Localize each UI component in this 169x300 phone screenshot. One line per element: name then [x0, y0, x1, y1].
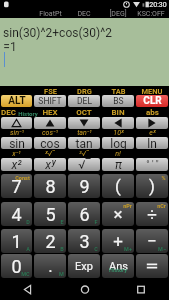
button[interactable]: ): [136, 174, 168, 198]
button[interactable]: SHIFT: [34, 95, 66, 107]
staticText: π: [115, 158, 122, 171]
staticText: x²: [11, 158, 22, 171]
button[interactable]: .: [34, 254, 66, 278]
staticText: .: [48, 256, 53, 276]
button[interactable]: Move right: [136, 117, 168, 129]
button[interactable]: Recent apps: [113, 280, 169, 300]
staticText: DEC: [1, 108, 16, 116]
staticText: %: [161, 175, 166, 181]
staticText: B: [60, 246, 64, 252]
button[interactable]: −: [136, 229, 168, 253]
button[interactable]: 7: [1, 174, 32, 198]
button[interactable]: Scroll up: [1, 117, 32, 129]
staticText: 9: [79, 176, 90, 197]
button[interactable]: ° ′ ″: [136, 158, 168, 171]
staticText: Const: [15, 175, 30, 181]
button[interactable]: cos: [34, 137, 66, 149]
staticText: History: [18, 110, 38, 117]
staticText: nPr: [123, 203, 132, 209]
button[interactable]: Ans: [102, 254, 134, 278]
staticText: DEC: [77, 10, 91, 18]
staticText: sin(30)^2+cos(30)^2: [3, 26, 112, 40]
staticText: ° ′ ″: [146, 159, 159, 170]
button[interactable]: CLR: [136, 95, 168, 107]
staticText: BS: [113, 96, 124, 106]
staticText: M: [59, 271, 64, 277]
staticText: 3: [79, 231, 90, 252]
button[interactable]: DEL: [68, 95, 100, 107]
button[interactable]: π: [102, 158, 134, 171]
staticText: ): [149, 176, 155, 196]
button[interactable]: xʸ: [34, 158, 66, 171]
staticText: M−: [158, 246, 166, 252]
staticText: BIN: [111, 108, 125, 116]
button[interactable]: 1: [1, 229, 32, 253]
button[interactable]: ×: [102, 202, 134, 226]
button[interactable]: 2: [34, 229, 66, 253]
staticText: eˣ: [149, 129, 156, 136]
button[interactable]: 3: [68, 229, 100, 253]
staticText: Exp: [75, 260, 93, 273]
button[interactable]: Move down: [68, 117, 100, 129]
staticText: 4: [11, 204, 22, 225]
staticText: =1: [3, 40, 17, 54]
button[interactable]: 9: [68, 174, 100, 198]
button[interactable]: Back: [0, 280, 56, 300]
button[interactable]: (: [102, 174, 134, 198]
staticText: ALT: [8, 95, 26, 107]
staticText: ÷: [147, 204, 157, 224]
button[interactable]: Home: [57, 280, 113, 300]
button[interactable]: BS: [102, 95, 134, 107]
staticText: DEL: [77, 96, 92, 106]
staticText: FloatPt: [39, 10, 62, 18]
staticText: ln: [147, 137, 157, 149]
staticText: TAB: [111, 87, 126, 94]
staticText: E: [60, 219, 64, 225]
staticText: cos: [40, 137, 60, 149]
button[interactable]: 4: [1, 202, 32, 226]
staticText: C: [94, 246, 98, 252]
staticText: F: [94, 219, 98, 225]
staticText: 6: [79, 204, 90, 225]
staticText: x⁻¹: [12, 150, 21, 157]
button[interactable]: ln: [136, 137, 168, 149]
staticText: 8: [45, 176, 56, 197]
staticText: A: [26, 246, 30, 252]
staticText: SHIFT: [38, 96, 62, 106]
button[interactable]: 8: [34, 174, 66, 198]
staticText: ×: [113, 204, 123, 224]
button[interactable]: ÷: [136, 202, 168, 226]
button[interactable]: [136, 254, 168, 278]
staticText: log: [110, 137, 127, 149]
staticText: Ans: [109, 260, 128, 273]
button[interactable]: x²: [1, 158, 32, 171]
staticText: sin: [9, 137, 25, 149]
button[interactable]: +: [102, 229, 134, 253]
staticText: √‾: [78, 158, 91, 171]
staticText: OCT: [76, 108, 92, 116]
staticText: ˣ√‾: [45, 150, 55, 157]
staticText: 7: [11, 176, 22, 197]
button[interactable]: 0: [1, 254, 32, 278]
staticText: −: [147, 231, 157, 251]
staticText: nCr: [157, 203, 166, 209]
staticText: ³√‾: [79, 150, 89, 157]
staticText: DRG: [77, 87, 92, 94]
button[interactable]: log: [102, 137, 134, 149]
button[interactable]: ALT: [1, 95, 32, 107]
staticText: abs: [146, 108, 159, 116]
staticText: History: [109, 267, 127, 273]
staticText: 2: [45, 231, 56, 252]
button[interactable]: √‾: [68, 158, 100, 171]
button[interactable]: Move up: [34, 117, 66, 129]
staticText: 10ˣ: [113, 129, 124, 136]
button[interactable]: 5: [34, 202, 66, 226]
button[interactable]: Move left: [102, 117, 134, 129]
button[interactable]: tan: [68, 137, 100, 149]
button[interactable]: sin: [1, 137, 32, 149]
button[interactable]: 6: [68, 202, 100, 226]
staticText: 20:30: [149, 1, 167, 9]
staticText: 0: [11, 256, 22, 277]
button[interactable]: Exp: [68, 254, 100, 278]
staticText: CLR: [143, 95, 162, 107]
